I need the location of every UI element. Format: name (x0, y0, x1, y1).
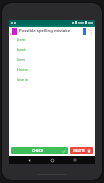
button[interactable]: Back (26, 157, 32, 163)
button[interactable]: DELETE (70, 147, 93, 154)
button[interactable]: head (17, 47, 83, 51)
staticText: Possible spelling mistake found (19, 28, 83, 34)
button[interactable]: Possible spelling mistake found (11, 27, 87, 35)
staticText: lose w (17, 77, 28, 81)
staticText: lines (17, 57, 26, 61)
staticText: Item (17, 37, 26, 41)
staticText: House (17, 67, 28, 71)
other: Check (62, 149, 66, 153)
button[interactable]: House (17, 67, 83, 71)
staticText: CHECK (32, 148, 44, 153)
button[interactable]: CHECK (11, 147, 68, 154)
staticText: DELETE (73, 148, 86, 153)
button[interactable]: Item (17, 37, 83, 41)
button[interactable]: Home (49, 157, 55, 163)
staticText: head (17, 47, 26, 51)
button[interactable]: lose w (17, 77, 83, 81)
button[interactable]: More options (87, 28, 94, 36)
other: Delete (87, 149, 91, 153)
button[interactable]: Recent apps (72, 157, 78, 163)
button[interactable]: lines (17, 57, 83, 61)
